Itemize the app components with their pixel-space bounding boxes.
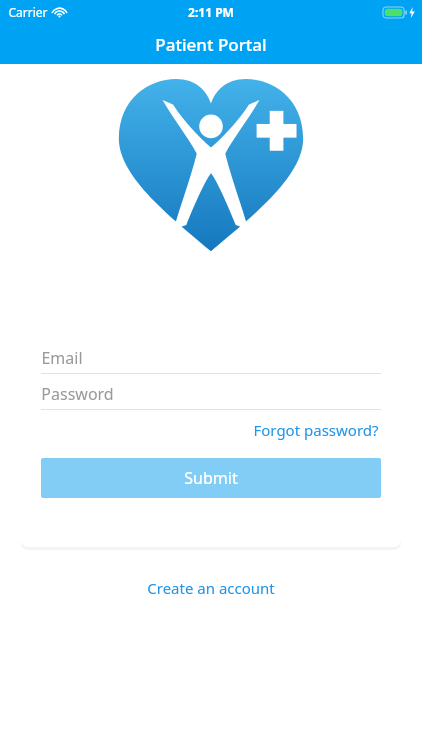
staticText: Password — [41, 383, 114, 405]
button[interactable]: Email — [41, 342, 381, 373]
button[interactable]: Password — [41, 378, 381, 409]
button[interactable]: Create an account — [137, 573, 285, 603]
staticText: Patient Portal — [155, 33, 267, 56]
staticText: Submit — [184, 467, 238, 489]
staticText: Create an account — [147, 578, 275, 598]
staticText: Email — [41, 347, 83, 369]
staticText: Forgot password? — [253, 420, 379, 440]
staticText: 2:11 PM — [188, 4, 234, 20]
button[interactable]: Forgot password? — [251, 416, 381, 444]
staticText: Carrier — [8, 4, 48, 20]
button[interactable]: Submit — [41, 458, 381, 498]
